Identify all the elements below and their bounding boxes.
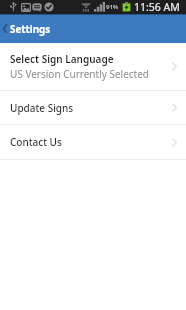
button[interactable]: Select Sign Language xyxy=(0,43,186,90)
staticText: Select Sign Language xyxy=(10,52,114,66)
staticText: Update Signs xyxy=(10,101,74,115)
button[interactable]: Update Signs xyxy=(0,91,186,124)
button[interactable]: Contact Us xyxy=(0,125,186,159)
staticText: Contact Us xyxy=(10,135,62,149)
staticText: 11:56 AM xyxy=(134,0,180,14)
staticText: 91% xyxy=(106,3,119,11)
staticText: US Version Currently Selected xyxy=(10,67,149,81)
button[interactable]: Navigate up xyxy=(0,14,59,43)
staticText: Settings xyxy=(10,23,51,36)
other: Navigate up xyxy=(3,24,7,33)
